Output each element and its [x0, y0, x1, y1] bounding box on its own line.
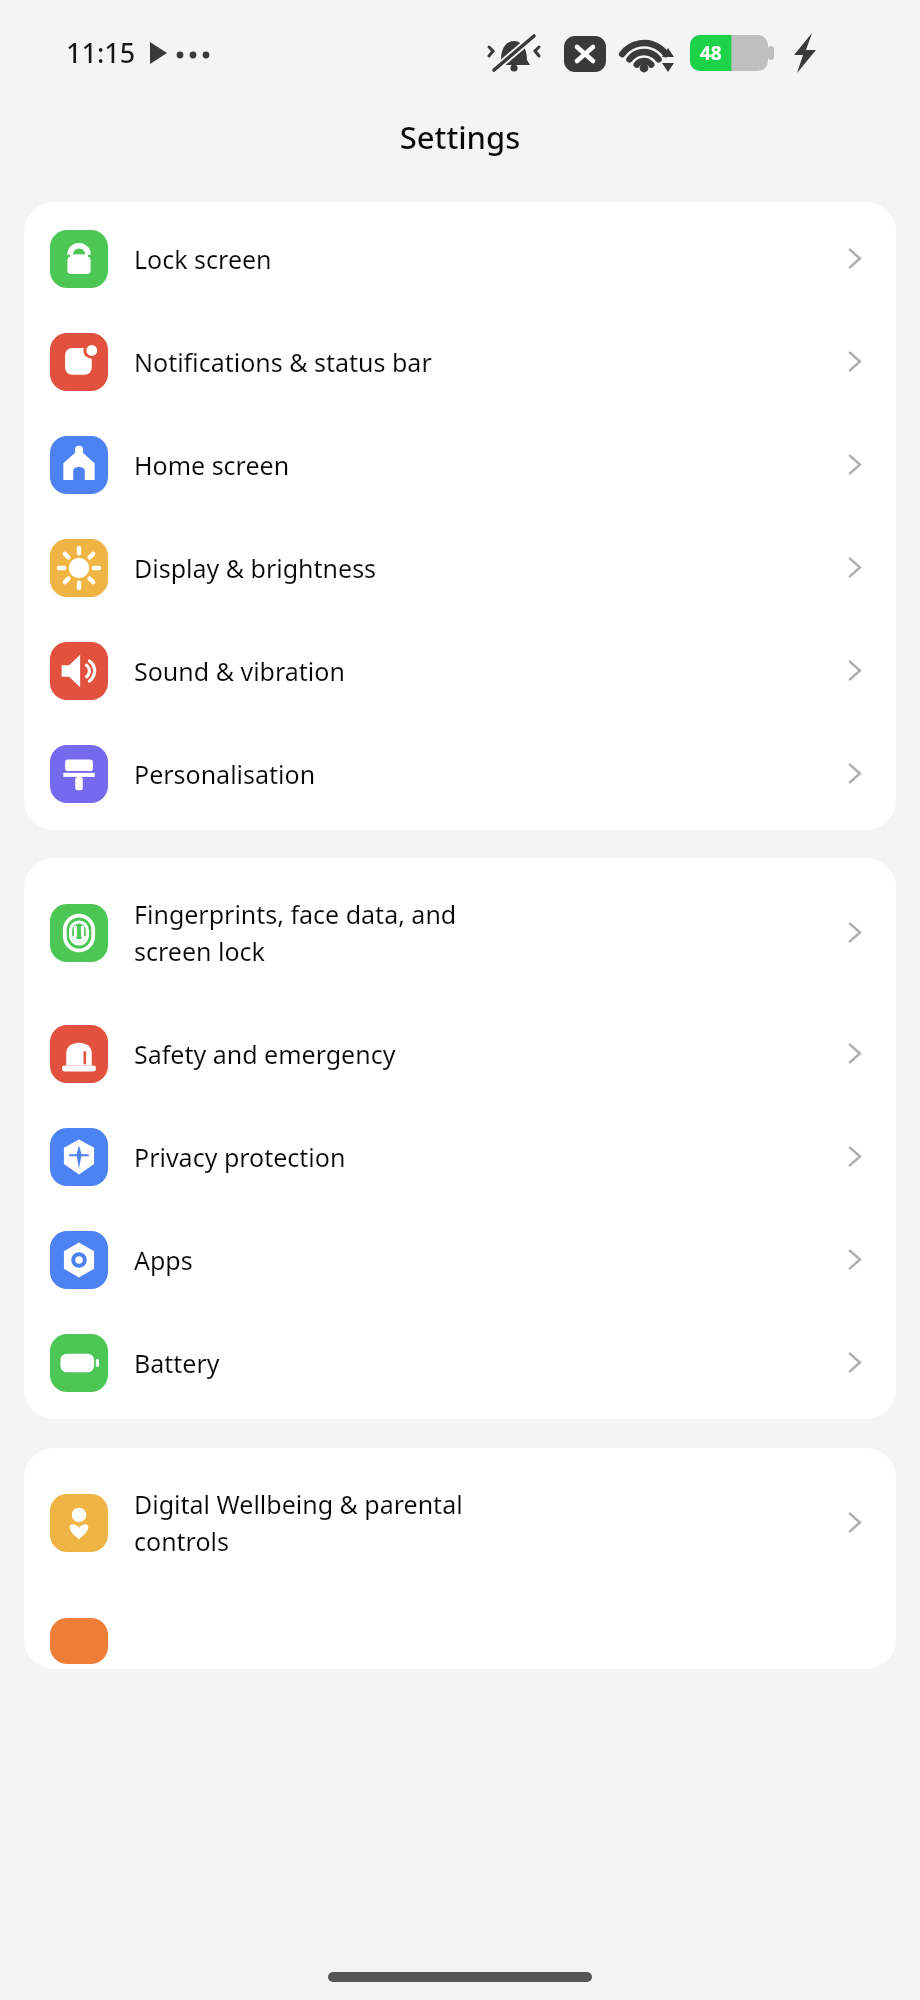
button[interactable]: Fingerprints, face data, and screen lock	[24, 863, 896, 1002]
button[interactable]: More settings	[24, 1592, 896, 1664]
staticText: Notifications & status bar	[134, 345, 831, 379]
staticText: Digital Wellbeing & parental controls	[134, 1487, 831, 1558]
staticText: Settings	[0, 116, 920, 158]
button[interactable]: Apps	[24, 1208, 896, 1311]
staticText: Display & brightness	[134, 551, 831, 585]
button[interactable]: Privacy protection	[24, 1105, 896, 1208]
button[interactable]: Digital Wellbeing & parental controls	[24, 1453, 896, 1592]
button[interactable]: Safety and emergency	[24, 1002, 896, 1105]
staticText: Battery	[134, 1346, 831, 1380]
button[interactable]: Sound & vibration	[24, 619, 896, 722]
button[interactable]: Notifications & status bar	[24, 310, 896, 413]
button[interactable]: Lock screen	[24, 207, 896, 310]
staticText: Home screen	[134, 448, 831, 482]
staticText: Safety and emergency	[134, 1037, 831, 1071]
button[interactable]: Display & brightness	[24, 516, 896, 619]
staticText: Apps	[134, 1243, 831, 1277]
staticText: Privacy protection	[134, 1140, 831, 1174]
button[interactable]: Personalisation	[24, 722, 896, 825]
button[interactable]: Battery	[24, 1311, 896, 1414]
staticText: Sound & vibration	[134, 654, 831, 688]
staticText: Personalisation	[134, 757, 831, 791]
staticText: 11:15	[66, 34, 136, 71]
button[interactable]: Home screen	[24, 413, 896, 516]
staticText: Fingerprints, face data, and screen lock	[134, 897, 831, 968]
staticText: 48	[700, 40, 722, 66]
staticText: Lock screen	[134, 242, 831, 276]
